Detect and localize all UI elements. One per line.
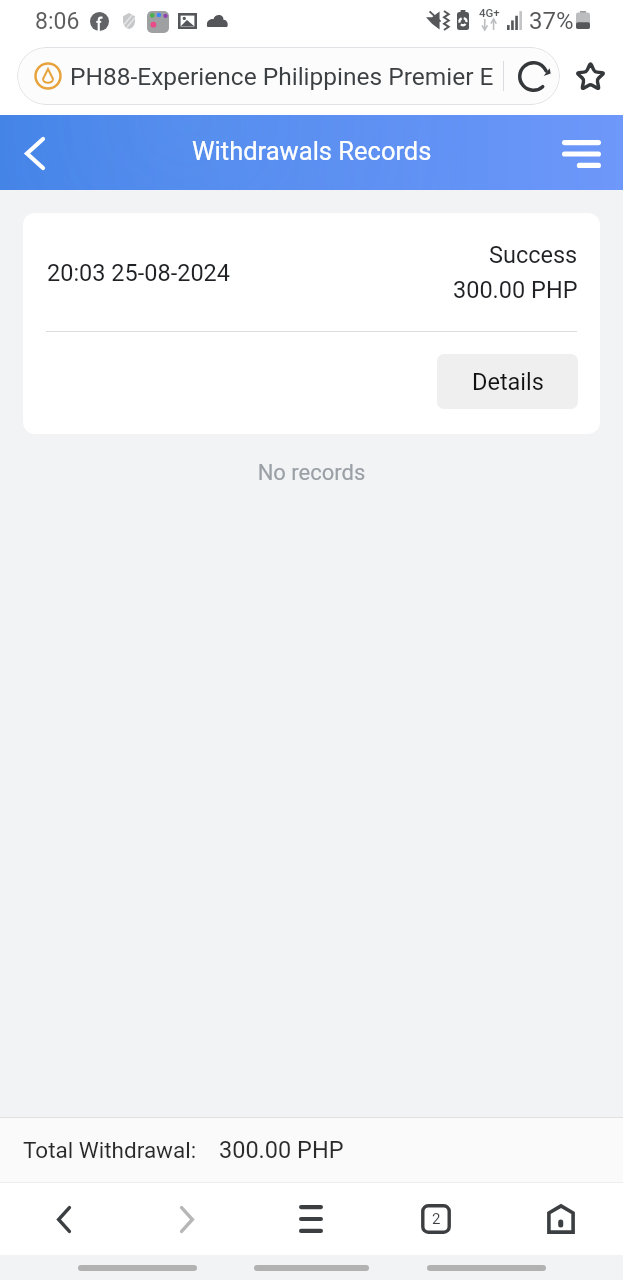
button[interactable]: Bookmark [567,53,613,99]
staticText: Withdrawals Records [192,136,432,166]
staticText: 37% [529,7,574,35]
button[interactable]: Tabs [408,1191,464,1247]
staticText: PH88-Experience Philippines Premier E [70,62,494,91]
staticText: Success [489,241,578,269]
staticText: 20:03 25-08-2024 [47,259,230,287]
button[interactable]: Browser menu [283,1191,339,1247]
staticText: 300.00 PHP [219,1136,344,1164]
staticText: Details [472,368,544,396]
staticText: No records [0,460,623,486]
button[interactable]: Reload [510,53,556,99]
staticText: Total Withdrawal: [23,1137,197,1163]
staticText: 2 [432,1210,441,1228]
staticText: 300.00 PHP [453,276,578,304]
staticText: 4G+ [479,6,500,19]
staticText: 8:06 [35,8,80,35]
button[interactable]: Back [4,122,66,184]
button[interactable]: Menu [550,123,612,185]
button[interactable]: Home [533,1191,589,1247]
button[interactable]: Details [437,354,578,409]
button[interactable]: Address bar [17,47,560,105]
button[interactable]: Forward [159,1191,215,1247]
button[interactable]: Back [36,1191,92,1247]
